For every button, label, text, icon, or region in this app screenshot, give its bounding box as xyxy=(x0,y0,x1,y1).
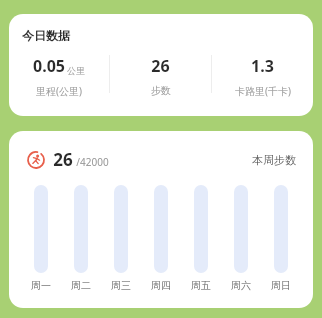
staticText: /42000 xyxy=(76,155,109,169)
button[interactable]: 今日数据 xyxy=(9,14,313,116)
button[interactable]: 1.3 xyxy=(212,55,313,98)
staticText: 卡路里(千卡) xyxy=(235,84,291,98)
staticText: 周一 xyxy=(31,279,51,292)
staticText: 26 xyxy=(151,55,170,77)
button[interactable]: 26 xyxy=(110,55,211,97)
staticText: 0.05 xyxy=(33,55,65,77)
button[interactable]: 0.05 xyxy=(9,55,109,98)
staticText: 周二 xyxy=(71,279,91,292)
staticText: 本周步数 xyxy=(252,153,296,167)
staticText: 今日数据 xyxy=(22,28,70,43)
staticText: 周四 xyxy=(151,279,171,292)
staticText: 周三 xyxy=(111,279,131,292)
staticText: 1.3 xyxy=(251,55,274,77)
staticText: 公里 xyxy=(67,65,85,76)
staticText: 里程(公里) xyxy=(36,84,82,98)
staticText: 周六 xyxy=(231,279,251,292)
staticText: 周日 xyxy=(271,279,291,292)
staticText: 步数 xyxy=(151,84,171,97)
button[interactable]: Steps xyxy=(9,131,313,308)
staticText: 周五 xyxy=(191,279,211,292)
other: Steps xyxy=(27,151,45,169)
staticText: 26 xyxy=(53,148,73,171)
